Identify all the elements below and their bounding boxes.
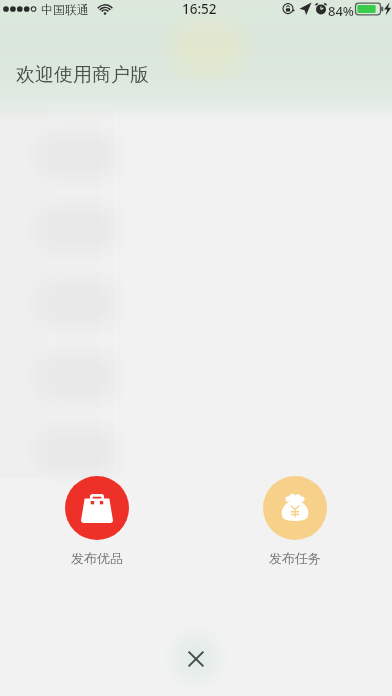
button[interactable]: 发布任务 [259, 476, 331, 566]
button[interactable]: Close [174, 637, 218, 681]
staticText: 16:52 [182, 0, 217, 18]
staticText: 84% [328, 2, 354, 20]
staticText: 发布任务 [269, 550, 321, 566]
staticText: 中国联通 [41, 2, 89, 17]
button[interactable]: 发布优品 [61, 476, 133, 566]
staticText: 发布优品 [71, 550, 123, 566]
staticText: 欢迎使用商户版 [16, 63, 149, 87]
